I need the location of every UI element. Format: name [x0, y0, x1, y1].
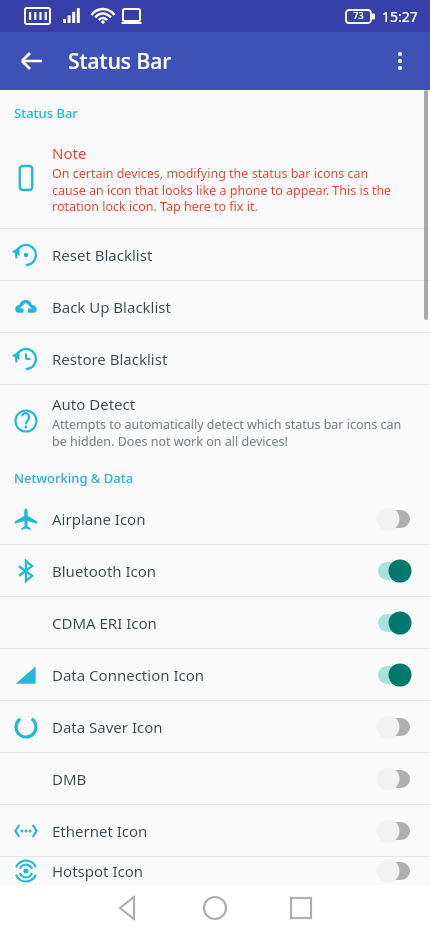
button[interactable]: Note [0, 128, 430, 228]
staticText: Data Saver Icon [52, 717, 163, 737]
staticText: Ethernet Icon [52, 821, 148, 841]
button[interactable]: Back Up Blacklist [0, 281, 430, 332]
staticText: 15:27 [382, 7, 418, 26]
staticText: Networking & Data [14, 469, 134, 487]
button[interactable]: Data Saver Icon [0, 701, 430, 752]
button[interactable]: Restore Blacklist [0, 333, 430, 384]
button[interactable]: Data Connection Icon [0, 649, 430, 700]
button[interactable]: Airplane Icon [0, 493, 430, 544]
button[interactable]: Auto Detect [0, 385, 430, 457]
staticText: Status Bar [68, 47, 172, 76]
button[interactable]: Ethernet Icon [0, 805, 430, 856]
staticText: Back Up Blacklist [52, 297, 171, 317]
staticText: DMB [52, 769, 87, 789]
button[interactable]: CDMA ERI Icon [0, 597, 430, 648]
staticText: CDMA ERI Icon [52, 613, 157, 633]
staticText: Status Bar [14, 104, 78, 122]
button[interactable]: Bluetooth Icon [0, 545, 430, 596]
staticText: Hotspot Icon [52, 861, 144, 881]
staticText: Attempts to automatically detect which s… [52, 416, 404, 449]
staticText: Restore Blacklist [52, 349, 168, 369]
staticText: Reset Blacklist [52, 245, 153, 265]
button[interactable]: Reset Blacklist [0, 229, 430, 280]
staticText: Bluetooth Icon [52, 561, 157, 581]
staticText: On certain devices, modifying the status… [52, 165, 404, 214]
button[interactable]: DMB [0, 753, 430, 804]
staticText: Data Connection Icon [52, 665, 205, 685]
staticText: Auto Detect [52, 394, 136, 414]
staticText: Note [52, 143, 87, 163]
staticText: Airplane Icon [52, 509, 146, 529]
staticText: 73 [346, 9, 371, 24]
button[interactable]: More options [378, 39, 422, 83]
button[interactable]: Hotspot Icon [0, 857, 430, 885]
button[interactable]: Back [10, 39, 54, 83]
